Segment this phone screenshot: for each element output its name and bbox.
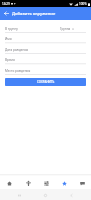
button[interactable]: Settings — [37, 176, 55, 189]
button[interactable] — [5, 34, 86, 44]
button[interactable]: Back — [0, 7, 12, 20]
staticText: 14:29 — [2, 2, 10, 6]
button[interactable]: Chat — [73, 176, 91, 189]
button[interactable] — [5, 23, 86, 33]
staticText: В группу — [5, 27, 18, 31]
staticText: Дата рождения — [5, 48, 29, 52]
button[interactable]: Home — [0, 176, 19, 189]
button[interactable] — [5, 44, 86, 54]
staticText: Имя — [5, 37, 12, 41]
button[interactable]: Home — [41, 191, 49, 199]
button[interactable] — [5, 65, 86, 75]
staticText: Время — [5, 58, 15, 62]
staticText: Добавить окружение — [12, 11, 56, 17]
staticText: Место рождения — [5, 69, 31, 73]
button[interactable] — [5, 55, 86, 65]
staticText: Группа — [60, 27, 71, 31]
staticText: 100% — [79, 2, 87, 6]
button[interactable]: СОХРАНИТЬ — [5, 78, 86, 86]
button[interactable]: Back — [67, 191, 75, 199]
button[interactable]: Recents — [15, 191, 23, 199]
staticText: СОХРАНИТЬ — [37, 80, 55, 84]
button[interactable]: Favorites — [55, 176, 73, 189]
button[interactable]: People — [19, 176, 37, 189]
